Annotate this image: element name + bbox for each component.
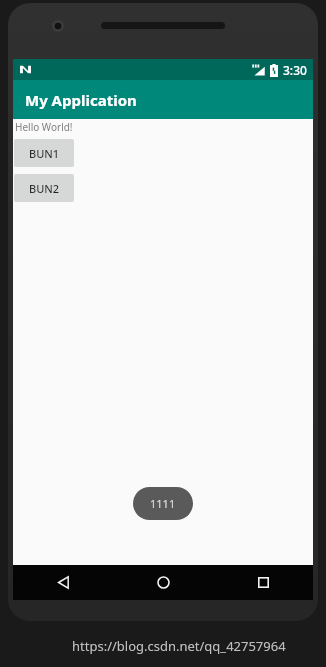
staticText: 1111 xyxy=(150,496,176,511)
staticText: Hello World! xyxy=(15,120,73,134)
button[interactable]: BUN2 xyxy=(14,174,74,202)
staticText: My Application xyxy=(25,90,137,110)
button[interactable]: Recent apps xyxy=(213,565,313,600)
button[interactable]: BUN1 xyxy=(14,139,74,167)
button[interactable]: 1111 xyxy=(133,487,193,520)
button[interactable]: Home xyxy=(113,565,213,600)
staticText: BUN2 xyxy=(29,181,60,196)
staticText: BUN1 xyxy=(29,146,60,161)
staticText: 3:30 xyxy=(283,62,307,78)
staticText: https://blog.csdn.net/qq_42757964 xyxy=(72,637,326,655)
button[interactable]: Back xyxy=(13,565,113,600)
